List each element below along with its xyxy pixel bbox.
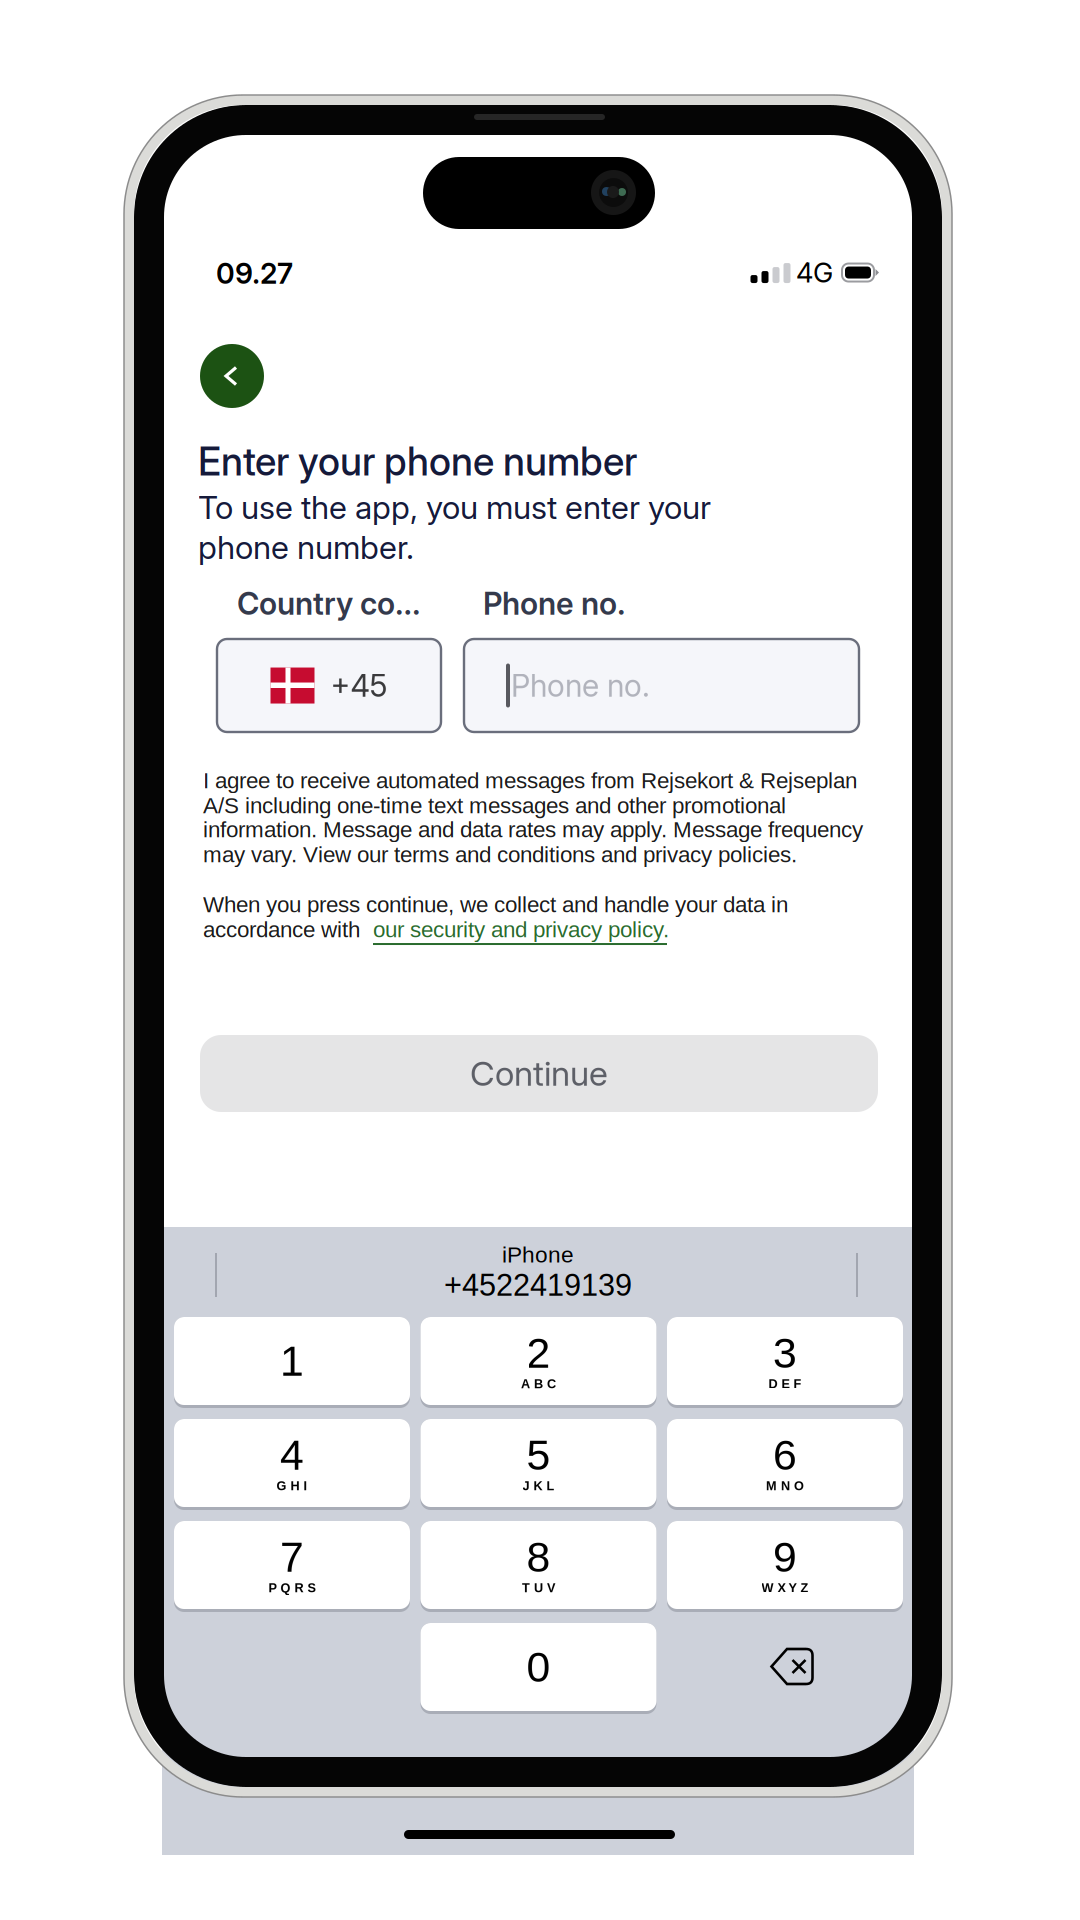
staticText: M N O xyxy=(766,1479,804,1493)
button[interactable]: Continue xyxy=(200,1035,878,1112)
button[interactable]: 2 xyxy=(420,1317,656,1408)
staticText: 4G xyxy=(796,256,833,289)
staticText: 6 xyxy=(773,1431,797,1479)
staticText: accordance with xyxy=(203,917,360,942)
staticText: information. Message and data rates may … xyxy=(203,817,863,842)
staticText: +45 xyxy=(330,667,387,704)
staticText: iPhone xyxy=(502,1242,574,1267)
staticText: 0 xyxy=(526,1643,550,1691)
staticText: Phone no. xyxy=(511,667,650,704)
staticText: phone number. xyxy=(198,528,414,567)
button[interactable]: 0 xyxy=(420,1623,656,1714)
staticText: 3 xyxy=(773,1329,797,1377)
button[interactable]: our security and privacy policy. xyxy=(373,917,669,945)
staticText: 7 xyxy=(280,1533,304,1581)
staticText: Phone no. xyxy=(483,585,626,622)
staticText: I agree to receive automated messages fr… xyxy=(203,768,857,793)
staticText: 09.27 xyxy=(216,256,293,291)
button[interactable]: +45 xyxy=(217,639,441,732)
button[interactable]: 5 xyxy=(420,1419,656,1510)
staticText: To use the app, you must enter your xyxy=(198,488,711,527)
button[interactable]: 7 xyxy=(174,1521,410,1612)
staticText: 9 xyxy=(773,1533,797,1581)
button[interactable]: Phone no. xyxy=(464,639,859,732)
staticText: G H I xyxy=(276,1479,307,1493)
staticText: Enter your phone number xyxy=(198,438,637,485)
button[interactable]: 4 xyxy=(174,1419,410,1510)
button[interactable]: 1 xyxy=(174,1317,410,1408)
staticText: Continue xyxy=(470,1053,608,1094)
staticText: P Q R S xyxy=(268,1581,315,1595)
staticText: T U V xyxy=(522,1581,555,1595)
staticText: our security and privacy policy. xyxy=(373,917,669,942)
staticText: D E F xyxy=(768,1377,801,1391)
staticText: J K L xyxy=(522,1479,554,1493)
button[interactable]: 9 xyxy=(667,1521,903,1612)
button[interactable]: 6 xyxy=(667,1419,903,1510)
staticText: Country co… xyxy=(237,585,421,622)
staticText: may vary. View our terms and conditions … xyxy=(203,842,797,867)
staticText: A B C xyxy=(521,1377,556,1391)
staticText: W X Y Z xyxy=(761,1581,808,1595)
staticText: 1 xyxy=(280,1337,304,1385)
staticText: 4 xyxy=(280,1431,304,1479)
button[interactable]: 8 xyxy=(420,1521,656,1612)
button[interactable]: 3 xyxy=(667,1317,903,1408)
button[interactable]: Back xyxy=(200,344,264,408)
staticText: 5 xyxy=(526,1431,550,1479)
staticText: When you press continue, we collect and … xyxy=(203,892,788,917)
staticText: +4522419139 xyxy=(444,1268,632,1302)
staticText: 2 xyxy=(526,1329,550,1377)
staticText: A/S including one-time text messages and… xyxy=(203,793,786,818)
staticText: 8 xyxy=(526,1533,550,1581)
button[interactable]: Delete xyxy=(732,1622,852,1710)
